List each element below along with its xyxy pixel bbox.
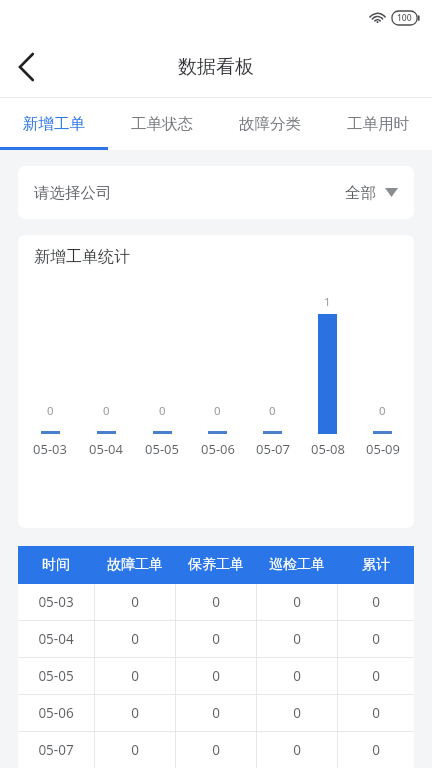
staticText: 0: [212, 741, 220, 759]
staticText: 新增工单统计: [34, 247, 130, 267]
staticText: 0: [293, 593, 301, 611]
staticText: 累计: [362, 556, 390, 574]
staticText: 请选择公司: [34, 183, 112, 203]
staticText: 05-05: [38, 667, 74, 685]
staticText: 0: [293, 704, 301, 722]
staticText: 工单状态: [131, 114, 193, 134]
staticText: 05-07: [256, 440, 290, 458]
button[interactable]: 工单状态: [108, 98, 216, 150]
staticText: 0: [212, 667, 220, 685]
staticText: 100: [397, 12, 412, 24]
button[interactable]: 工单用时: [324, 98, 432, 150]
button[interactable]: 05-03: [18, 584, 414, 620]
staticText: 0: [293, 741, 301, 759]
staticText: 0: [212, 630, 220, 648]
staticText: 故障工单: [107, 556, 163, 574]
staticText: 0: [372, 593, 380, 611]
staticText: 05-03: [33, 440, 67, 458]
staticText: 0: [131, 741, 139, 759]
staticText: 05-04: [89, 440, 123, 458]
button[interactable]: 05-07: [18, 732, 414, 768]
staticText: 工单用时: [347, 114, 409, 134]
button[interactable]: 请选择公司: [18, 166, 414, 219]
staticText: 新增工单: [23, 114, 85, 134]
staticText: 故障分类: [239, 114, 301, 134]
staticText: 0: [372, 630, 380, 648]
button[interactable]: Back: [0, 41, 52, 93]
staticText: 0: [214, 403, 221, 419]
staticText: 0: [212, 704, 220, 722]
staticText: 05-07: [38, 741, 74, 759]
staticText: 0: [293, 667, 301, 685]
staticText: 0: [47, 403, 54, 419]
staticText: 0: [159, 403, 166, 419]
staticText: 05-03: [38, 593, 74, 611]
button[interactable]: 故障分类: [216, 98, 324, 150]
staticText: 0: [372, 741, 380, 759]
staticText: 0: [131, 630, 139, 648]
staticText: 1: [324, 294, 331, 310]
staticText: 05-04: [38, 630, 74, 648]
button[interactable]: 新增工单: [0, 98, 108, 150]
staticText: 05-09: [366, 440, 400, 458]
button[interactable]: 05-06: [18, 695, 414, 731]
staticText: 保养工单: [188, 556, 244, 574]
staticText: 0: [131, 593, 139, 611]
staticText: 0: [212, 593, 220, 611]
staticText: 数据看板: [178, 55, 254, 79]
staticText: 0: [131, 667, 139, 685]
button[interactable]: 05-04: [18, 621, 414, 657]
staticText: 0: [372, 704, 380, 722]
staticText: 0: [372, 667, 380, 685]
staticText: 巡检工单: [269, 556, 325, 574]
staticText: 0: [293, 630, 301, 648]
staticText: 05-05: [145, 440, 179, 458]
staticText: 0: [269, 403, 276, 419]
staticText: 0: [131, 704, 139, 722]
button[interactable]: 05-05: [18, 658, 414, 694]
staticText: 全部: [345, 183, 376, 203]
staticText: 05-06: [38, 704, 74, 722]
staticText: 05-08: [311, 440, 345, 458]
staticText: 05-06: [201, 440, 235, 458]
staticText: 0: [103, 403, 110, 419]
staticText: 0: [379, 403, 386, 419]
staticText: 时间: [42, 556, 70, 574]
